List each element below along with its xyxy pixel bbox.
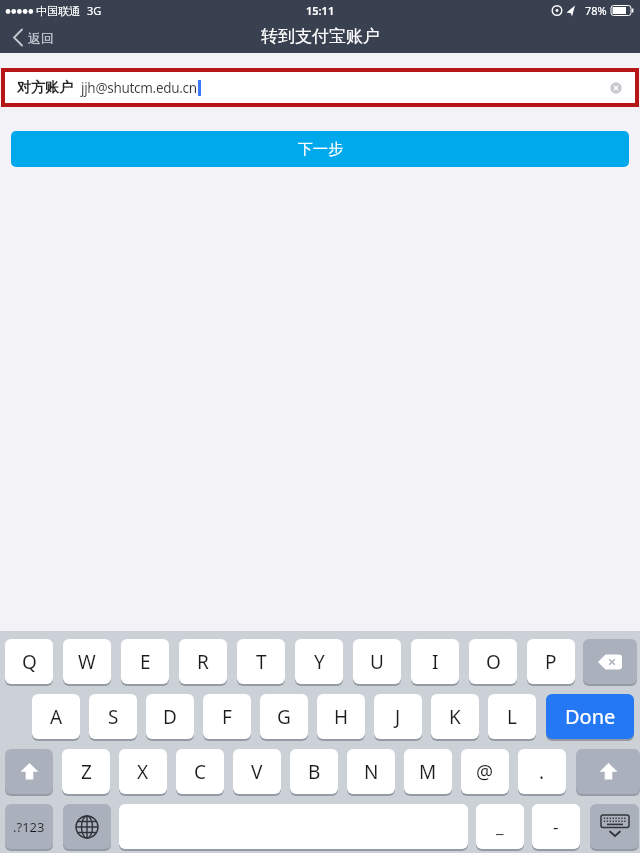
staticText: Q [22,649,37,675]
button[interactable]: B [290,749,338,794]
button[interactable] [63,804,111,849]
button[interactable]: Y [295,639,343,684]
staticText: W [78,649,96,675]
button[interactable]: X [119,749,167,794]
staticText: @ [476,759,494,785]
staticText: . [539,759,545,785]
button[interactable]: W [63,639,111,684]
button[interactable]: E [121,639,169,684]
staticText: F [222,704,232,730]
staticText: D [163,704,177,730]
staticText: K [449,704,461,730]
button[interactable]: K [431,694,479,739]
staticText: Z [81,759,92,785]
button[interactable]: F [203,694,251,739]
button[interactable]: N [347,749,395,794]
staticText: .?123 [13,818,45,836]
button[interactable]: U [353,639,401,684]
button[interactable]: T [237,639,285,684]
button[interactable] [583,639,637,684]
button[interactable]: M [404,749,452,794]
staticText: - [553,815,559,838]
button[interactable]: Q [5,639,53,684]
staticText: jjh@shutcm.edu.cn [81,79,197,97]
staticText: X [137,759,149,785]
button[interactable]: .?123 [5,804,53,849]
staticText: 对方账户 [17,79,73,97]
staticText: 15:11 [306,3,335,18]
button[interactable]: L [488,694,536,739]
staticText: B [308,759,321,785]
button[interactable]: G [260,694,308,739]
button[interactable]: . [518,749,566,794]
staticText: 下一步 [298,140,343,159]
staticText: G [277,704,291,730]
button[interactable]: A [32,694,80,739]
staticText: J [395,704,401,730]
staticText: L [507,704,517,730]
staticText: Y [314,649,325,675]
staticText: 中国联通 [36,4,80,18]
button[interactable]: C [176,749,224,794]
staticText: O [486,649,501,675]
button[interactable]: V [233,749,281,794]
staticText: H [334,704,349,730]
button[interactable] [5,749,53,794]
staticText: M [419,759,437,785]
staticText: 3G [87,3,102,18]
button[interactable]: _ [476,804,524,849]
button[interactable]: R [179,639,227,684]
button[interactable]: D [146,694,194,739]
button[interactable]: O [469,639,517,684]
button[interactable]: I [411,639,459,684]
button[interactable]: S [89,694,137,739]
button[interactable]: H [317,694,365,739]
button[interactable]: Done [546,694,634,739]
staticText: 返回 [28,30,54,46]
staticText: S [108,704,119,730]
staticText: Done [565,703,616,730]
button[interactable]: J [374,694,422,739]
button[interactable]: 下一步 [11,131,629,167]
button[interactable]: 返回 [13,29,54,46]
staticText: C [194,759,207,785]
staticText: A [50,704,63,730]
button[interactable] [119,804,468,849]
button[interactable]: P [527,639,575,684]
staticText: P [545,649,557,675]
staticText: R [197,649,209,675]
button[interactable]: 对方账户 [5,72,635,103]
staticText: 78% [585,3,607,18]
staticText: T [256,649,267,675]
staticText: N [364,759,379,785]
staticText: U [370,649,384,675]
button[interactable]: @ [461,749,509,794]
button[interactable] [590,804,639,849]
staticText: E [140,649,151,675]
staticText: 转到支付宝账户 [261,26,380,47]
button[interactable] [576,749,640,794]
staticText: _ [496,815,504,838]
staticText: V [251,759,263,785]
button[interactable]: Z [62,749,110,794]
button[interactable]: - [532,804,580,849]
staticText: I [432,649,439,675]
